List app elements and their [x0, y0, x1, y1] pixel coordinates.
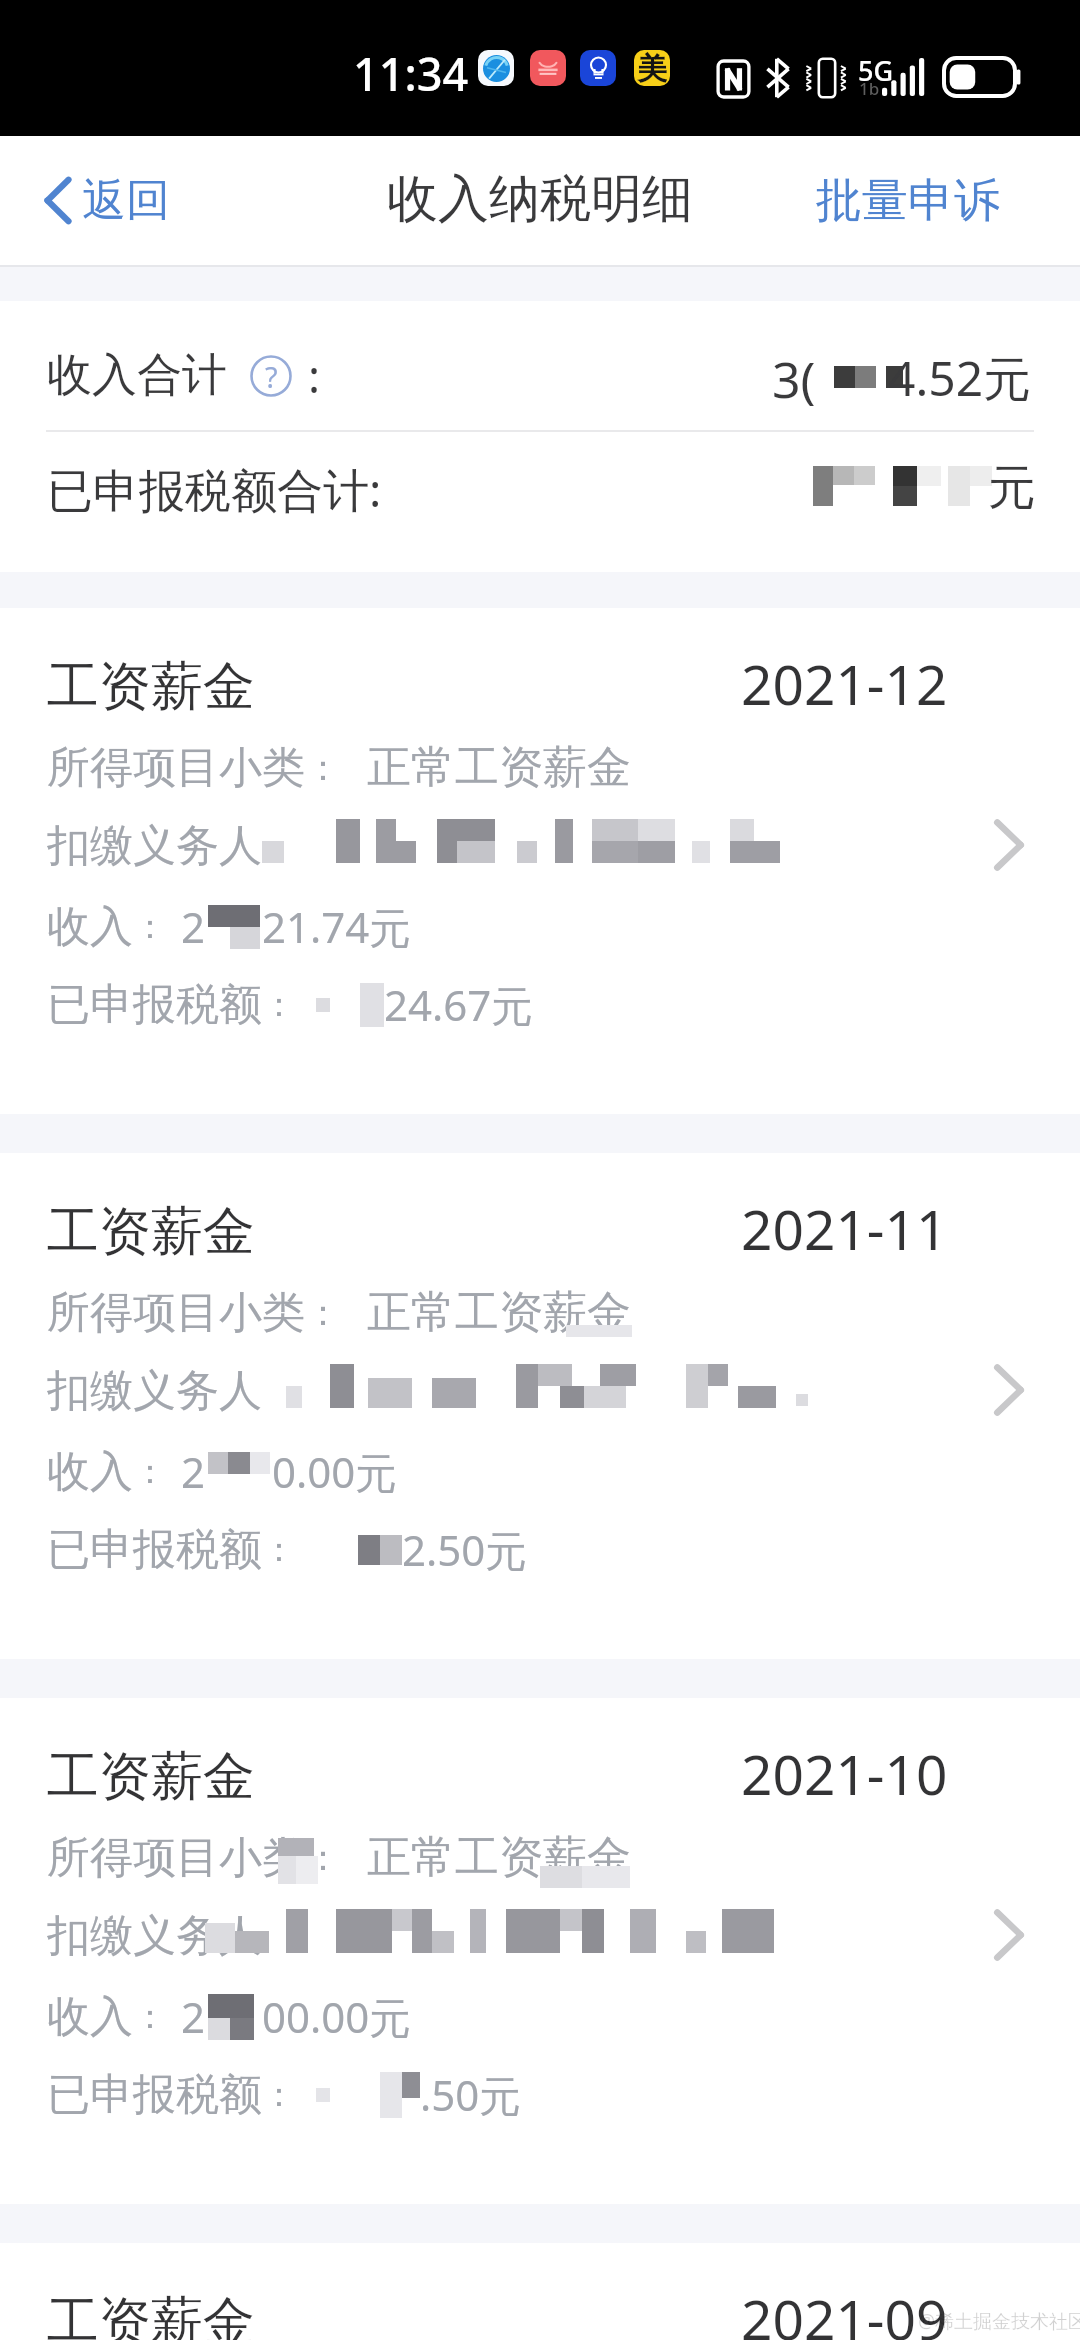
staticText: : — [308, 345, 321, 406]
staticText: 2021-09 — [741, 2281, 948, 2340]
staticText: 所得项目小类 — [47, 741, 305, 795]
staticText: ： — [262, 1528, 296, 1571]
staticText: 扣缴义务人 — [47, 1909, 262, 1963]
staticText: ： — [133, 1450, 167, 1493]
staticText: ? — [265, 357, 278, 396]
button[interactable]: 批量申诉 — [788, 148, 1080, 254]
staticText: 批量申诉 — [816, 172, 1000, 230]
staticText: ： — [133, 905, 167, 948]
staticText: 工资薪金 — [47, 1744, 255, 1810]
staticText: 11:34 — [353, 43, 469, 104]
staticText: 21.74元 — [262, 898, 412, 955]
staticText: 收入 — [47, 1445, 133, 1499]
other: 查看详情 — [995, 821, 1023, 869]
staticText: ： — [262, 983, 296, 1026]
staticText: 所得项目小类 — [47, 1831, 305, 1885]
staticText: 4.52元 — [888, 345, 1032, 411]
staticText: 工资薪金 — [47, 654, 255, 720]
staticText: ： — [305, 1835, 341, 1880]
staticText: 00.00元 — [262, 1988, 412, 2045]
staticText: 2021-11 — [741, 1191, 948, 1266]
staticText: 已申报税额 — [47, 978, 262, 1032]
staticText: 返回 — [82, 173, 170, 228]
staticText: 工资薪金 — [47, 1199, 255, 1265]
staticText: ： — [133, 1995, 167, 2038]
button[interactable]: 说明 — [250, 355, 292, 397]
staticText: 正常工资薪金 — [367, 1285, 631, 1340]
button[interactable]: 工资薪金 — [0, 608, 1080, 1114]
button[interactable]: 工资薪金 — [0, 1153, 1080, 1659]
button[interactable]: 返回 — [0, 149, 198, 252]
staticText: 元 — [988, 458, 1036, 518]
staticText: @稀土掘金技术社区 — [918, 2308, 1080, 2334]
staticText: 1b — [859, 77, 880, 100]
staticText: 工资薪金 — [47, 2289, 255, 2340]
staticText: 正常工资薪金 — [367, 1830, 631, 1885]
staticText: 已申报税额合计: — [47, 458, 382, 521]
staticText: 正常工资薪金 — [367, 740, 631, 795]
staticText: 所得项目小类 — [47, 1286, 305, 1340]
staticText: 收入合计 — [47, 347, 227, 404]
staticText: 3( — [772, 345, 816, 413]
staticText: 2 — [181, 898, 206, 955]
staticText: 5G — [858, 52, 894, 89]
staticText: 2 — [181, 1988, 206, 2045]
staticText: 收入 — [47, 900, 133, 954]
staticText: 已申报税额 — [47, 2068, 262, 2122]
button[interactable]: 工资薪金 — [0, 2243, 1080, 2340]
staticText: 收入纳税明细 — [387, 167, 693, 231]
staticText: ： — [305, 745, 341, 790]
staticText: 2021-12 — [741, 646, 948, 721]
staticText: 扣缴义务人 — [47, 1364, 262, 1418]
staticText: 扣缴义务人 — [47, 819, 262, 873]
staticText: 2 — [181, 1443, 206, 1500]
staticText: 已申报税额 — [47, 1523, 262, 1577]
staticText: 收入 — [47, 1990, 133, 2044]
other: 查看详情 — [995, 1911, 1023, 1959]
button[interactable]: 工资薪金 — [0, 1698, 1080, 2204]
staticText: ： — [305, 1290, 341, 1335]
other: 查看详情 — [995, 1366, 1023, 1414]
staticText: 24.67元 — [384, 976, 534, 1033]
staticText: 2.50元 — [402, 1521, 528, 1578]
staticText: 2021-10 — [741, 1736, 948, 1811]
staticText: .50元 — [420, 2066, 522, 2123]
staticText: 美 — [637, 50, 667, 86]
staticText: 0.00元 — [272, 1443, 398, 1500]
staticText: ： — [262, 2073, 296, 2116]
